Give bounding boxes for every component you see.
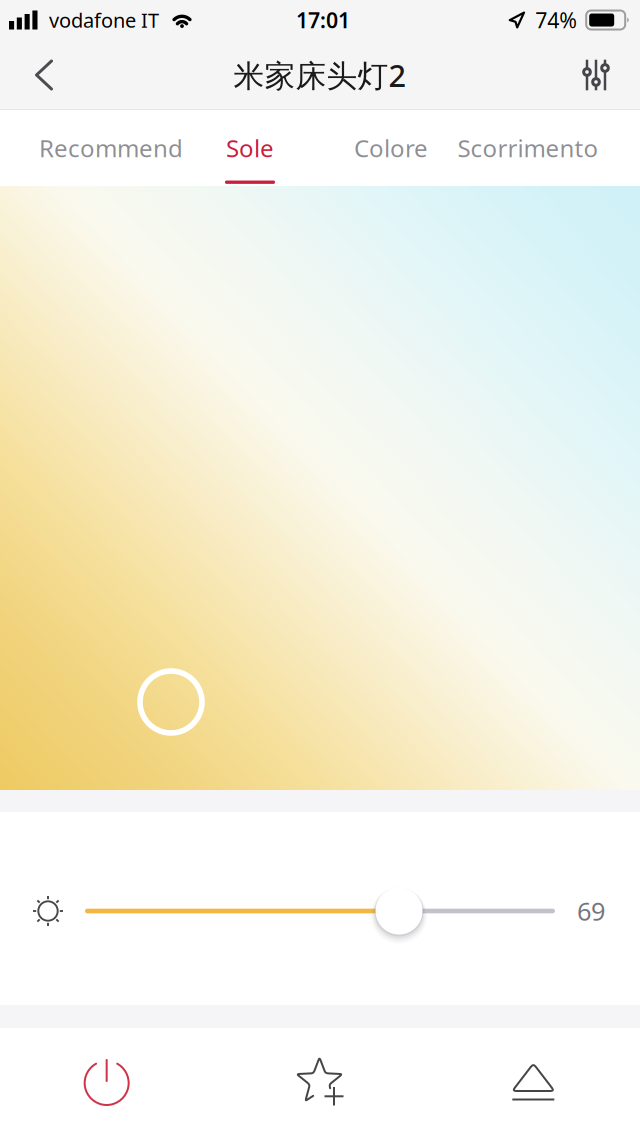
staticText: 17:01 bbox=[296, 6, 350, 34]
button[interactable]: Back bbox=[14, 44, 74, 106]
button[interactable]: More bbox=[427, 1028, 640, 1138]
button[interactable]: Colore bbox=[311, 110, 471, 186]
staticText: Scorrimento bbox=[457, 132, 598, 164]
staticText: 74% bbox=[535, 6, 577, 34]
button[interactable]: Sole bbox=[170, 110, 330, 186]
staticText: 69 bbox=[577, 894, 605, 928]
button[interactable]: Recommend bbox=[31, 110, 191, 186]
staticText: Recommend bbox=[39, 132, 183, 164]
staticText: Sole bbox=[226, 132, 274, 164]
staticText: 米家床头灯2 bbox=[233, 55, 406, 95]
staticText: vodafone IT bbox=[49, 7, 159, 33]
button[interactable]: Power bbox=[0, 1028, 213, 1138]
button[interactable]: Add to favorites bbox=[213, 1028, 427, 1138]
button[interactable]: Scorrimento bbox=[448, 110, 608, 186]
staticText: Colore bbox=[354, 132, 428, 164]
button[interactable]: Settings bbox=[566, 44, 626, 106]
